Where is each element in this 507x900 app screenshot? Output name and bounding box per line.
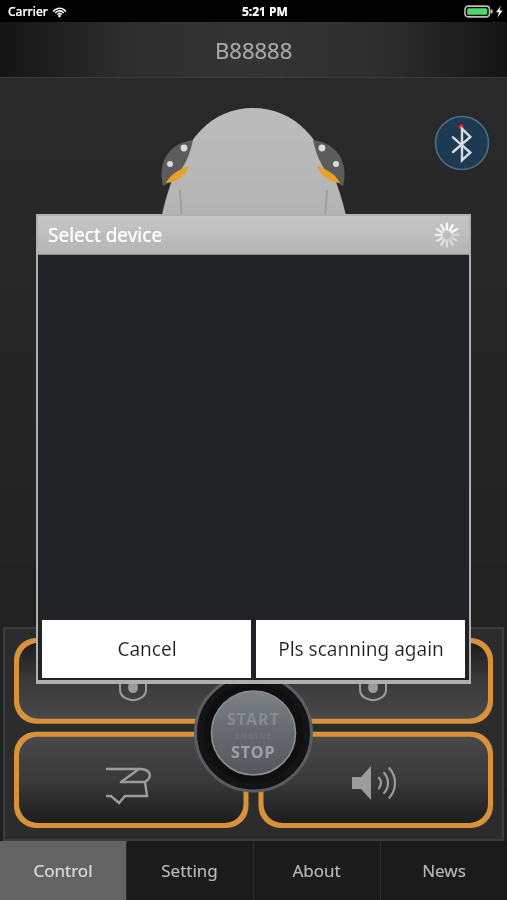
- staticText: STOP: [231, 741, 276, 763]
- staticText: News: [422, 859, 466, 882]
- button[interactable]: News: [380, 841, 507, 900]
- button[interactable]: Control panel: [0, 628, 507, 840]
- staticText: Select device: [48, 222, 163, 248]
- button[interactable]: Cancel: [42, 620, 251, 678]
- button[interactable]: Bluetooth: [434, 115, 490, 171]
- staticText: Control: [33, 859, 93, 882]
- staticText: Carrier: [8, 3, 48, 19]
- button[interactable]: About: [253, 841, 380, 900]
- staticText: Setting: [161, 859, 218, 882]
- button[interactable]: Setting: [126, 841, 253, 900]
- staticText: Cancel: [117, 636, 177, 662]
- staticText: About: [292, 859, 341, 882]
- staticText: Pls scanning again: [278, 636, 444, 662]
- staticText: 5:21 PM: [242, 3, 288, 19]
- staticText: START: [227, 708, 280, 730]
- staticText: B88888: [215, 35, 293, 65]
- button[interactable]: Pls scanning again: [256, 620, 465, 678]
- button[interactable]: Control: [0, 841, 126, 900]
- staticText: ENGINE: [235, 730, 272, 741]
